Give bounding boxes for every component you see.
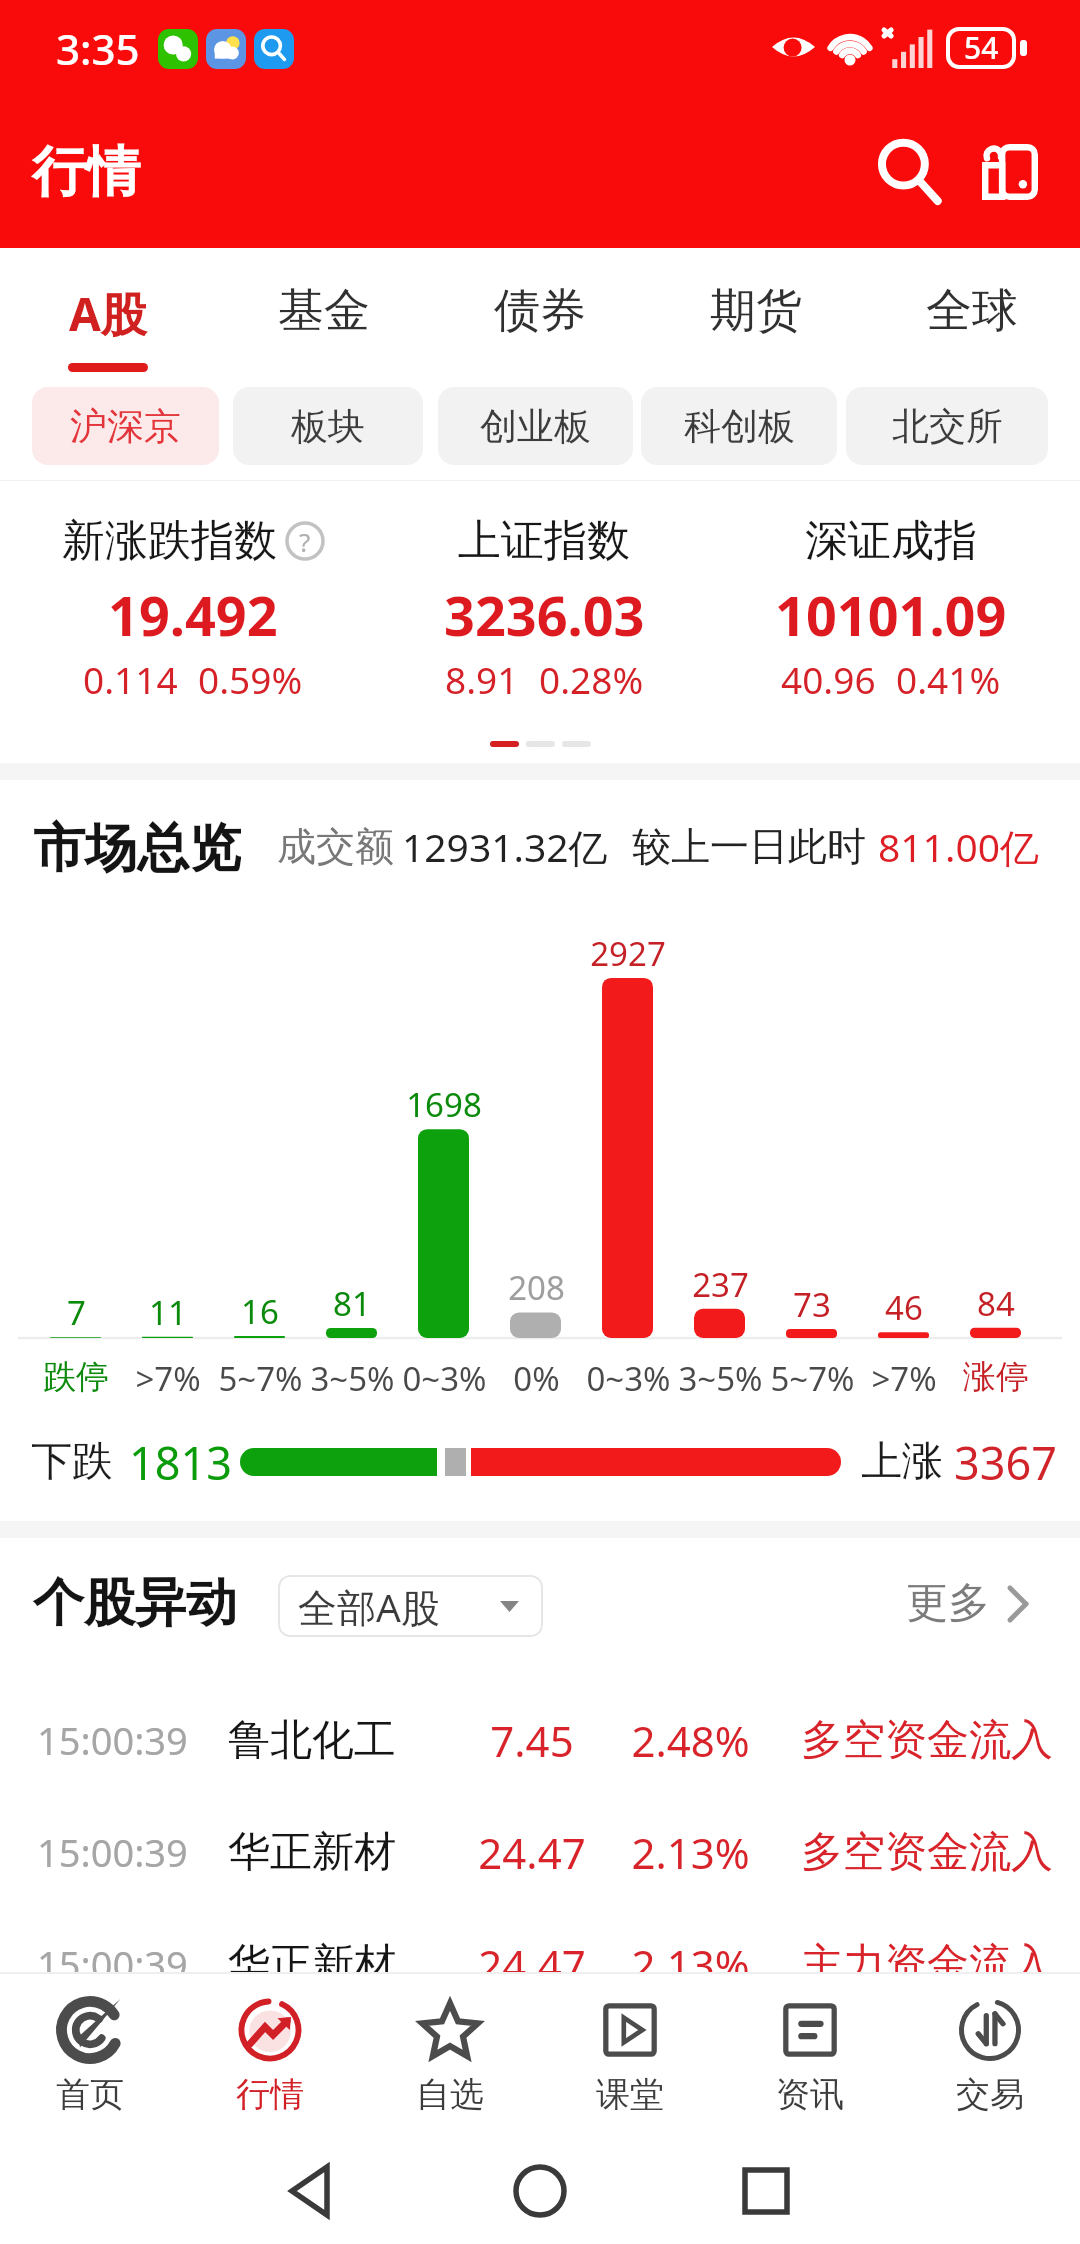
staticText: 0.59% <box>198 654 303 704</box>
button[interactable]: 15:00:39 <box>0 1908 1080 2020</box>
staticText: 2.48% <box>631 1712 750 1769</box>
staticText: 15:00:39 <box>37 1826 188 1878</box>
staticText: 73 <box>793 1282 831 1327</box>
staticText: 1698 <box>406 1082 482 1127</box>
staticText: 0.41% <box>896 654 1001 704</box>
staticText: 自选 <box>416 2073 484 2116</box>
button[interactable]: 更多 <box>906 1577 1028 1630</box>
staticText: 0% <box>513 1356 560 1401</box>
staticText: 3236.03 <box>444 578 645 652</box>
staticText: 7.45 <box>490 1712 574 1769</box>
staticText: 208 <box>508 1265 565 1310</box>
button[interactable]: 行情 <box>180 1972 360 2128</box>
staticText: 11 <box>149 1290 187 1335</box>
staticText: 54 <box>964 27 999 68</box>
staticText: 10101.09 <box>775 578 1007 652</box>
staticText: 债券 <box>494 282 586 340</box>
staticText: 12931.32亿 <box>402 820 608 873</box>
staticText: 811.00亿 <box>878 820 1039 873</box>
staticText: 科创板 <box>684 403 795 450</box>
staticText: 上证指数 <box>458 514 630 568</box>
button[interactable]: 自选 <box>360 1972 540 2128</box>
staticText: 板块 <box>291 403 365 450</box>
staticText: 全球 <box>926 282 1018 340</box>
staticText: 更多 <box>906 1577 990 1630</box>
staticText: 81 <box>333 1281 371 1326</box>
staticText: 16 <box>241 1289 279 1334</box>
staticText: 跌停 <box>43 1356 109 1398</box>
button[interactable]: Home <box>480 2136 600 2244</box>
staticText: 多空资金流入 <box>801 1714 1053 1767</box>
button[interactable]: 基金 <box>216 248 432 372</box>
staticText: 15:00:39 <box>37 1938 188 1990</box>
staticText: 5~7% <box>770 1356 855 1401</box>
staticText: 下跌 <box>31 1436 113 1488</box>
staticText: 1813 <box>129 1432 232 1493</box>
button[interactable]: 交易 <box>900 1972 1080 2128</box>
button[interactable]: 上证指数 <box>368 481 720 704</box>
staticText: 237 <box>692 1262 749 1307</box>
staticText: 首页 <box>56 2073 124 2116</box>
button[interactable]: 创业板 <box>438 387 633 465</box>
staticText: 多空资金流入 <box>801 1826 1053 1879</box>
staticText: 华正新材 <box>228 1826 396 1879</box>
staticText: 2.13% <box>631 1936 750 1993</box>
staticText: 15:00:39 <box>37 1714 188 1766</box>
staticText: 0~3% <box>402 1356 487 1401</box>
button[interactable]: 全部A股 <box>278 1575 543 1637</box>
button[interactable]: 期货 <box>648 248 864 372</box>
button[interactable]: 课堂 <box>540 1972 720 2128</box>
staticText: 3367 <box>954 1432 1057 1493</box>
staticText: >7% <box>135 1356 201 1401</box>
button[interactable]: Market list <box>962 124 1058 220</box>
staticText: 较上一日此时 <box>632 822 866 871</box>
staticText: 成交额 <box>277 822 394 871</box>
staticText: 3~5% <box>310 1356 395 1401</box>
staticText: 24.47 <box>478 1936 586 1993</box>
staticText: 行情 <box>236 2073 304 2116</box>
staticText: 鲁北化工 <box>228 1714 396 1767</box>
staticText: 5~7% <box>218 1356 303 1401</box>
button[interactable]: 新涨跌指数 <box>26 481 360 704</box>
button[interactable]: 科创板 <box>641 387 837 465</box>
staticText: 24.47 <box>478 1824 586 1881</box>
staticText: 0.114 <box>83 654 178 704</box>
staticText: 3:35 <box>56 20 140 77</box>
button[interactable]: 深证成指 <box>720 481 1062 704</box>
staticText: 全部A股 <box>298 1580 440 1633</box>
staticText: 0.28% <box>539 654 644 704</box>
button[interactable]: Recent apps <box>706 2136 826 2244</box>
button[interactable]: 首页 <box>0 1972 180 2128</box>
staticText: 北交所 <box>892 403 1003 450</box>
button[interactable]: 资讯 <box>720 1972 900 2128</box>
staticText: 期货 <box>710 282 802 340</box>
button[interactable]: 15:00:39 <box>0 1796 1080 1908</box>
staticText: 深证成指 <box>805 514 977 568</box>
staticText: 40.96 <box>781 654 876 704</box>
button[interactable]: 全球 <box>864 248 1080 372</box>
button[interactable]: Back <box>249 2136 369 2244</box>
button[interactable]: 债券 <box>432 248 648 372</box>
staticText: A股 <box>69 282 147 345</box>
staticText: 主力资金流入 <box>801 1938 1053 1991</box>
staticText: 涨停 <box>963 1356 1029 1398</box>
button[interactable]: A股 <box>0 248 216 372</box>
button[interactable]: 沪深京 <box>32 387 219 465</box>
staticText: 46 <box>885 1285 923 1330</box>
staticText: 华正新材 <box>228 1938 396 1991</box>
staticText: 创业板 <box>480 403 591 450</box>
staticText: 7 <box>67 1290 86 1335</box>
staticText: 行情 <box>32 138 140 206</box>
button[interactable]: 板块 <box>233 387 423 465</box>
staticText: 沪深京 <box>70 403 181 450</box>
staticText: 交易 <box>956 2073 1024 2116</box>
button[interactable]: 15:00:39 <box>0 1684 1080 1796</box>
staticText: 19.492 <box>108 578 278 652</box>
staticText: 3~5% <box>678 1356 763 1401</box>
staticText: 0~3% <box>586 1356 671 1401</box>
staticText: ? <box>299 524 311 559</box>
staticText: 个股异动 <box>33 1571 237 1635</box>
button[interactable]: Search <box>862 124 958 220</box>
staticText: 2927 <box>590 931 666 976</box>
button[interactable]: 北交所 <box>846 387 1048 465</box>
